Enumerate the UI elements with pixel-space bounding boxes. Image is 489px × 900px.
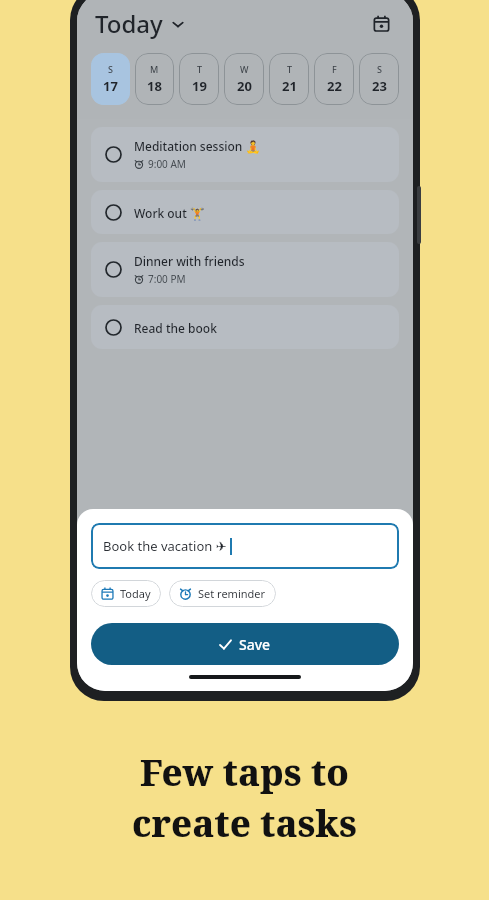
button[interactable]: Dinner with friends [91,242,399,297]
button[interactable]: Set reminder [169,580,276,607]
staticText: S [377,63,382,75]
button[interactable]: Save [91,623,399,665]
staticText: Today [95,7,163,40]
staticText: Meditation session 🧘 [134,138,261,154]
button[interactable]: Work out 🏋 [91,190,399,234]
staticText: Save [239,635,271,654]
button[interactable]: S [91,53,130,105]
staticText: Work out 🏋 [134,205,205,221]
button[interactable]: Today [91,580,161,607]
staticText: 23 [372,77,387,95]
button[interactable]: T [269,53,309,105]
button[interactable]: T [179,53,219,105]
button[interactable]: Read the book [91,305,399,349]
staticText: 22 [327,77,342,95]
button[interactable]: M [135,53,174,105]
staticText: create tasks [132,799,357,848]
staticText: M [150,63,159,75]
button[interactable]: F [314,53,354,105]
staticText: Dinner with friends [134,253,245,269]
staticText: 19 [192,77,207,95]
staticText: 21 [282,77,297,95]
staticText: Today [120,586,151,601]
staticText: 7:00 PM [148,272,186,286]
staticText: Few taps to [140,748,349,797]
staticText: T [197,63,203,75]
staticText: Book the vacation ✈ [103,537,227,555]
staticText: Set reminder [198,586,266,601]
button[interactable]: Today [95,7,185,40]
staticText: Read the book [134,320,217,336]
staticText: W [240,63,249,75]
button[interactable]: Book the vacation ✈ [91,523,399,569]
button[interactable]: Open calendar [365,7,397,39]
button[interactable]: W [224,53,264,105]
staticText: 18 [147,77,162,95]
staticText: 20 [237,77,252,95]
staticText: S [108,63,113,75]
button[interactable]: Meditation session 🧘 [91,127,399,182]
staticText: 17 [103,77,118,95]
staticText: T [287,63,293,75]
button[interactable]: S [359,53,399,105]
staticText: F [332,63,337,75]
staticText: 9:00 AM [148,157,186,171]
